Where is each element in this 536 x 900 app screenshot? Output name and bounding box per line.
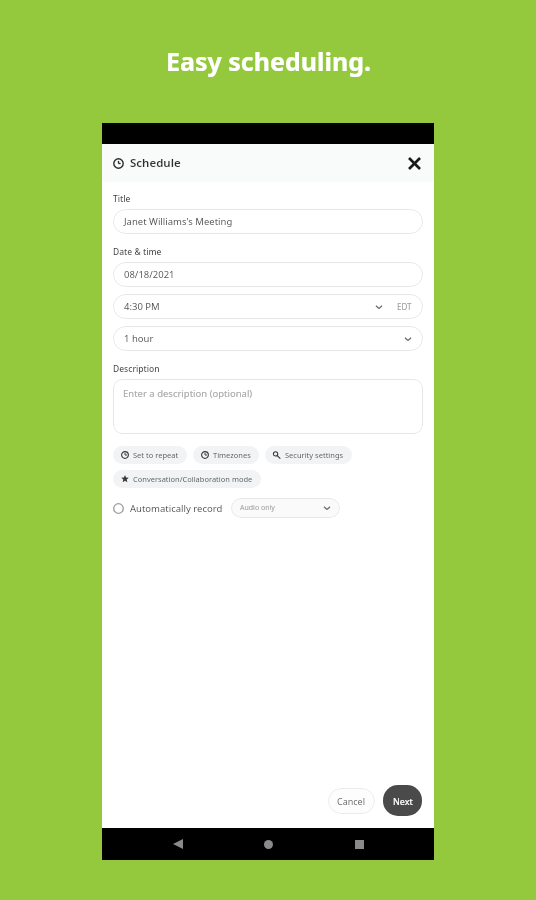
button[interactable]: Timezones	[193, 446, 259, 464]
button[interactable]: Back	[163, 829, 193, 859]
staticText: EDT	[397, 301, 412, 312]
button[interactable]: 08/18/2021	[113, 262, 423, 287]
staticText: Next	[393, 795, 413, 807]
staticText: Automatically record	[130, 502, 223, 515]
button[interactable]: Home	[253, 829, 283, 859]
staticText: Title	[113, 193, 131, 205]
staticText: Cancel	[337, 795, 366, 807]
staticText: 1 hour	[124, 332, 154, 345]
button[interactable]: 1 hour	[113, 326, 423, 351]
button[interactable]: Close	[402, 151, 426, 175]
staticText: 4:30 PM	[124, 300, 160, 313]
staticText: Enter a description (optional)	[123, 387, 253, 400]
staticText: Date & time	[113, 246, 162, 258]
button[interactable]: Audio only	[231, 498, 340, 518]
staticText: Description	[113, 363, 160, 375]
button[interactable]: Automatically record	[113, 502, 223, 515]
button[interactable]: Next	[383, 785, 422, 816]
button[interactable]: Set to repeat	[113, 446, 187, 464]
staticText: Easy scheduling.	[166, 44, 371, 78]
staticText: Conversation/Collaboration mode	[133, 474, 253, 484]
button[interactable]: 4:30 PM	[113, 294, 423, 319]
staticText: 08/18/2021	[124, 268, 175, 281]
staticText: Janet Williams's Meeting	[124, 215, 233, 228]
button[interactable]: Security settings	[265, 446, 352, 464]
button[interactable]: Conversation/Collaboration mode	[113, 470, 261, 488]
button[interactable]: Cancel	[328, 788, 375, 814]
button[interactable]: Janet Williams's Meeting	[113, 209, 423, 234]
staticText: Security settings	[285, 450, 344, 460]
staticText: Timezones	[213, 450, 251, 460]
staticText: Audio only	[240, 503, 275, 513]
button[interactable]: Recent apps	[344, 829, 374, 859]
staticText: Set to repeat	[133, 450, 179, 460]
staticText: Schedule	[130, 155, 181, 171]
button[interactable]: Enter a description (optional)	[113, 379, 423, 434]
